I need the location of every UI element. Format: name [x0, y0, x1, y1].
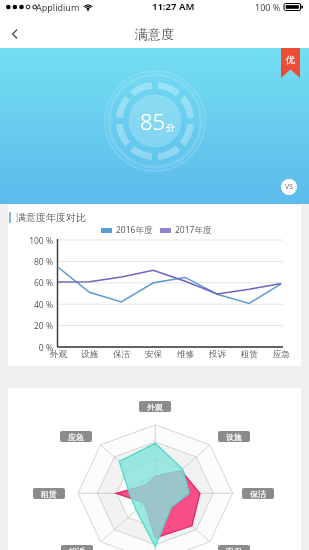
- staticText: 保洁: [250, 489, 266, 499]
- staticText: Applidium: [36, 1, 80, 13]
- staticText: 分: [166, 122, 175, 133]
- staticText: 40 %: [8, 299, 53, 311]
- staticText: 租赁: [41, 489, 57, 499]
- staticText: 外观: [147, 402, 163, 412]
- staticText: 11:27 AM: [152, 0, 195, 13]
- button[interactable]: Back: [0, 20, 30, 48]
- staticText: 85: [140, 106, 166, 136]
- staticText: 满意度: [135, 26, 174, 42]
- button[interactable]: Excellent badge: [281, 48, 300, 78]
- staticText: 100 %: [255, 1, 281, 13]
- button[interactable]: VS: [281, 179, 297, 195]
- staticText: 投诉: [209, 349, 226, 360]
- staticText: 安保: [226, 546, 242, 550]
- staticText: 20 %: [8, 320, 53, 332]
- staticText: 0 %: [8, 342, 53, 354]
- staticText: 60 %: [8, 277, 53, 289]
- staticText: 应急: [68, 432, 84, 442]
- staticText: 应急: [273, 349, 290, 360]
- staticText: 设施: [226, 432, 242, 442]
- staticText: 维修: [177, 349, 194, 360]
- staticText: 安保: [145, 349, 162, 360]
- staticText: 80 %: [8, 256, 53, 268]
- staticText: 投诉: [69, 546, 85, 550]
- staticText: 100 %: [8, 235, 53, 247]
- staticText: VS: [285, 182, 294, 192]
- staticText: 设施: [81, 349, 98, 360]
- staticText: 保洁: [113, 349, 130, 360]
- staticText: 2017年度: [175, 224, 212, 236]
- staticText: 租赁: [241, 349, 258, 360]
- staticText: 满意度年度对比: [16, 211, 86, 224]
- staticText: 2016年度: [116, 224, 153, 236]
- staticText: 外观: [50, 349, 67, 360]
- staticText: 优: [286, 54, 295, 65]
